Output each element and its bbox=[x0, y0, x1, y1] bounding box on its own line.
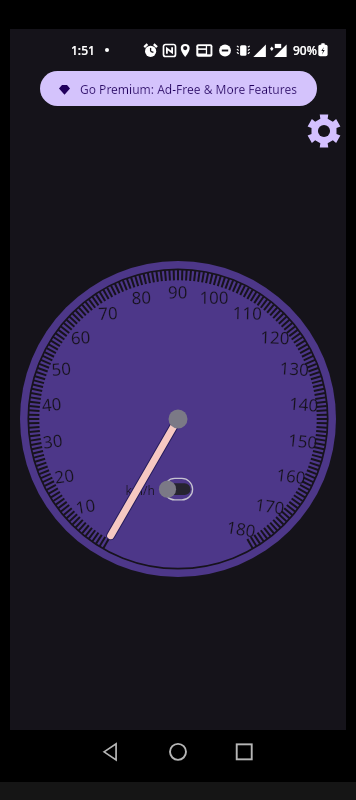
staticText: Go Premium: Ad-Free & More Features bbox=[80, 81, 298, 97]
button[interactable]: Settings bbox=[304, 111, 344, 151]
button[interactable]: Go Premium: Ad-Free & More Features bbox=[40, 71, 317, 106]
staticText: 90% bbox=[293, 42, 317, 58]
staticText: 1:51 bbox=[71, 42, 95, 58]
